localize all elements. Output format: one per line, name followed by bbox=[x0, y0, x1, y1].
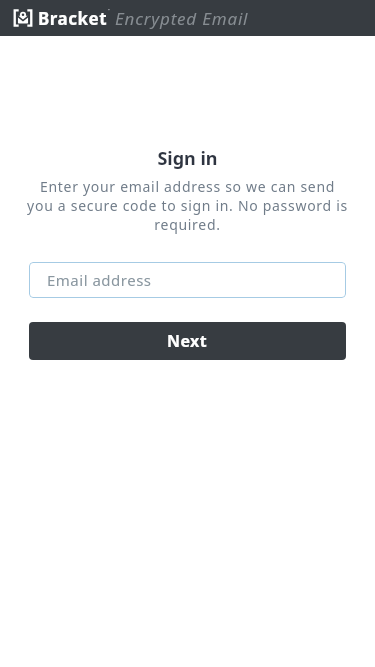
button[interactable]: Email address bbox=[29, 262, 346, 298]
staticText: Sign in bbox=[0, 146, 375, 171]
staticText: Email address bbox=[47, 270, 152, 290]
button[interactable]: Next bbox=[29, 322, 346, 360]
staticText: Enter your email address so we can send … bbox=[0, 177, 375, 234]
staticText: ˙ bbox=[108, 6, 110, 20]
staticText: Bracket bbox=[38, 7, 108, 30]
staticText: Next bbox=[167, 330, 208, 352]
staticText: Encrypted Email bbox=[115, 7, 249, 30]
